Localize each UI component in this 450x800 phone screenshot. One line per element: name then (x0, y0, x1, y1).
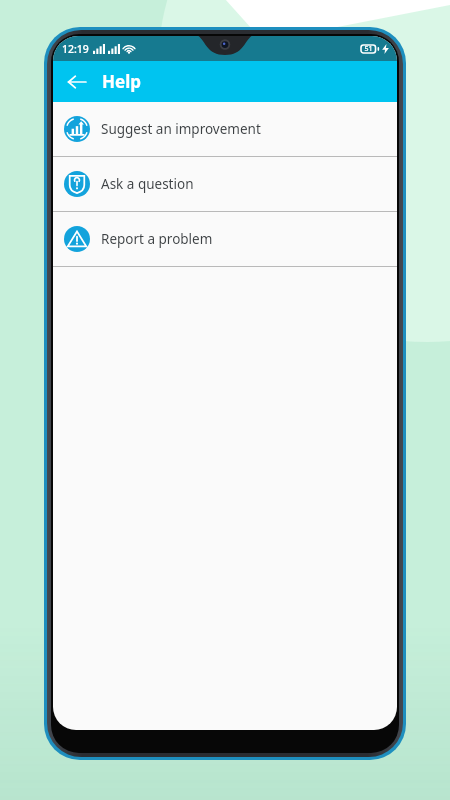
button[interactable]: Ask a question (53, 157, 397, 211)
button[interactable]: Report a problem (53, 212, 397, 266)
staticText: 51 (364, 44, 373, 54)
button[interactable]: Back (58, 63, 95, 100)
staticText: Report a problem (101, 230, 213, 248)
staticText: Suggest an improvement (101, 120, 261, 138)
staticText: Ask a question (101, 175, 194, 193)
staticText: 12:19 (62, 42, 89, 56)
button[interactable]: Suggest an improvement (53, 102, 397, 156)
staticText: Help (102, 70, 141, 93)
